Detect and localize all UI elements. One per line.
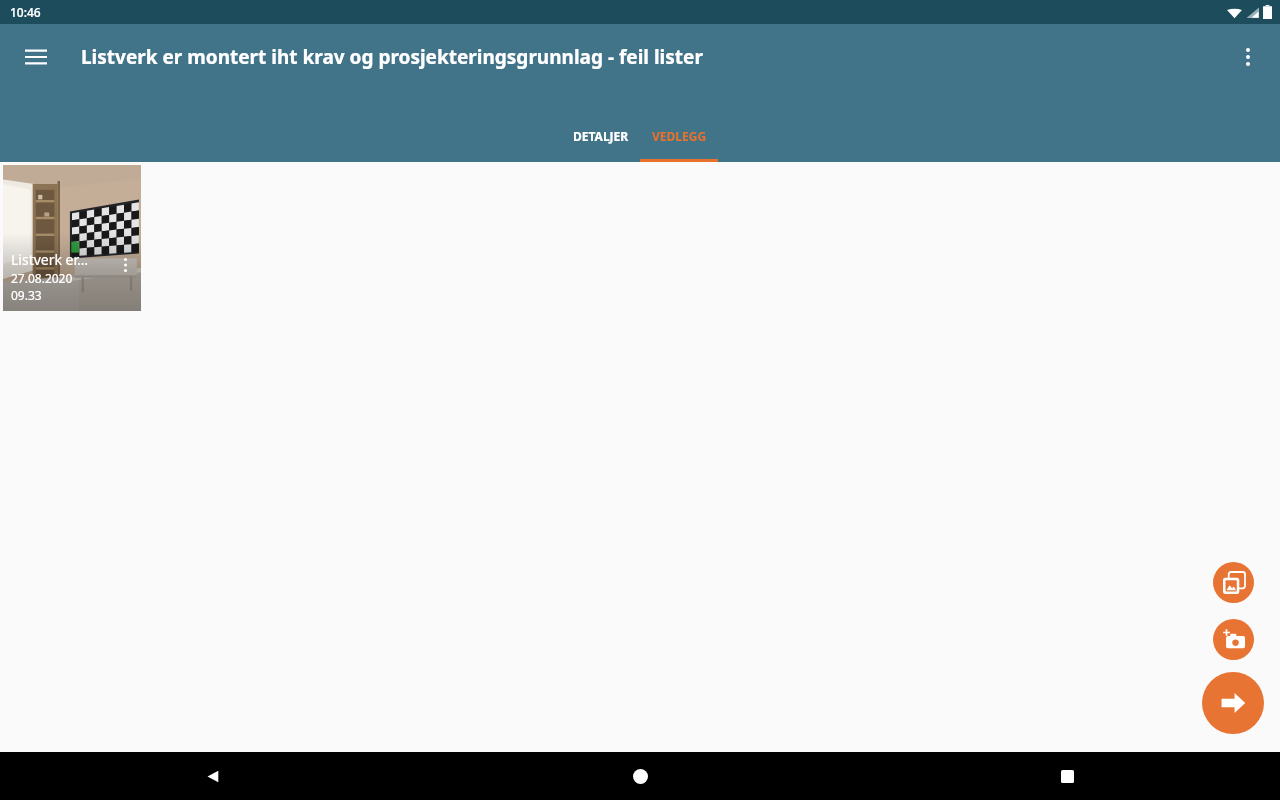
button[interactable]: More options bbox=[1224, 33, 1272, 81]
button[interactable]: Take photo bbox=[1213, 619, 1254, 660]
staticText: 10:46 bbox=[10, 4, 41, 20]
button[interactable]: Home bbox=[616, 752, 664, 800]
staticText: Listverk er montert iht krav og prosjekt… bbox=[81, 44, 703, 70]
button[interactable]: VEDLEGG bbox=[640, 128, 718, 162]
staticText: DETALJER bbox=[573, 128, 629, 144]
button[interactable]: Add from photo library bbox=[1213, 562, 1254, 603]
staticText: Listverk er… bbox=[11, 250, 89, 269]
button[interactable]: Continue bbox=[1202, 672, 1264, 734]
button[interactable]: Open navigation menu bbox=[12, 33, 60, 81]
button[interactable]: Attachment options bbox=[111, 251, 139, 279]
staticText: 09.33 bbox=[11, 287, 42, 303]
button[interactable]: Listverk er… bbox=[3, 165, 141, 311]
staticText: 27.08.2020 bbox=[11, 270, 73, 286]
button[interactable]: Back bbox=[189, 752, 237, 800]
button[interactable]: Recent apps bbox=[1043, 752, 1091, 800]
button[interactable]: DETALJER bbox=[562, 128, 640, 162]
staticText: VEDLEGG bbox=[652, 128, 707, 144]
